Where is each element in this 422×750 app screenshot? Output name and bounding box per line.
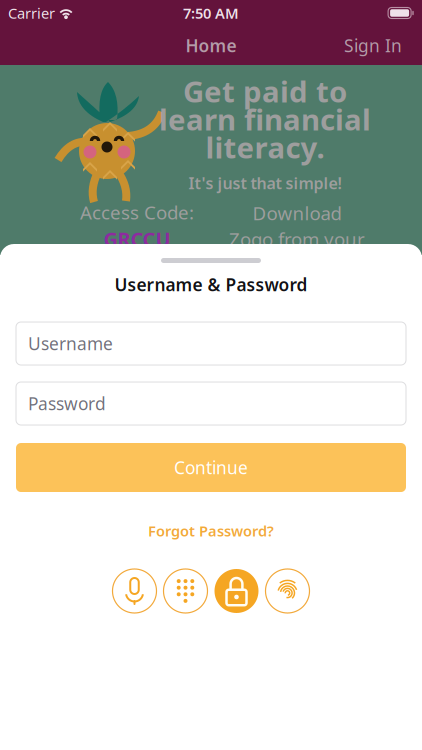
button[interactable]: Username [16, 322, 406, 365]
staticText: literacy. [205, 127, 324, 166]
button[interactable]: Password [16, 382, 406, 425]
button[interactable]: Continue [16, 443, 406, 492]
button[interactable]: Fingerprint login [263, 566, 312, 615]
button[interactable]: Passcode login [161, 566, 210, 615]
staticText: Username [28, 332, 113, 355]
staticText: Home [185, 34, 236, 57]
staticText: Download [252, 201, 341, 225]
staticText: Password [28, 392, 106, 415]
staticText: learn financial [159, 99, 371, 138]
button[interactable]: Sign In [334, 26, 412, 65]
staticText: Get paid to [183, 71, 347, 110]
staticText: Sign In [344, 34, 402, 57]
staticText: GRCCU [103, 226, 170, 252]
staticText: Continue [174, 456, 248, 479]
staticText: It's just that simple! [188, 172, 341, 194]
staticText: Zogo from your [229, 226, 365, 251]
button[interactable]: Forgot Password? [140, 515, 282, 546]
staticText: Forgot Password? [148, 521, 274, 540]
staticText: Username & Password [114, 273, 307, 296]
staticText: 7:50 AM [183, 3, 239, 23]
button[interactable]: Voice login [110, 566, 159, 615]
button[interactable]: Password login [212, 566, 261, 615]
button[interactable]: Home [171, 26, 250, 65]
staticText: Carrier [8, 3, 55, 23]
staticText: Access Code: [80, 200, 194, 225]
